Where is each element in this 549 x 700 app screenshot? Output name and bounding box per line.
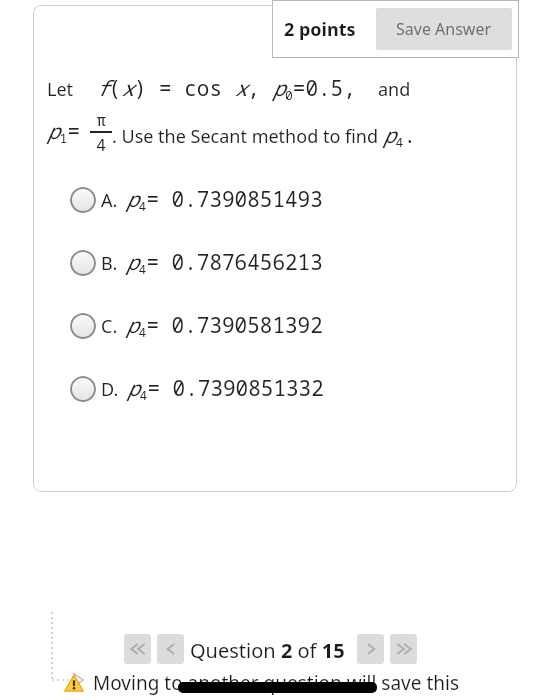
staticText: p4= 0.7390581392 (126, 311, 323, 341)
staticText: D. (101, 377, 119, 402)
staticText: p4= 0.7390851493 (126, 185, 323, 215)
staticText: . Use the Secant method to find (112, 124, 383, 149)
staticText: 2 points (284, 17, 356, 42)
button[interactable]: A. (70, 180, 323, 220)
button[interactable]: C. (70, 306, 323, 346)
button[interactable]: Save Answer (376, 8, 512, 50)
staticText: Save Answer (396, 18, 492, 40)
button[interactable]: First question (124, 634, 151, 664)
staticText: f(x) = cos x, p0=0.5, (96, 74, 356, 104)
staticText: B. (101, 251, 118, 276)
staticText: p4= 0.7390851332 (127, 374, 324, 404)
staticText: p4= 0.7876456213 (126, 248, 323, 278)
staticText: 4 (96, 133, 107, 156)
staticText: p1= (47, 117, 80, 147)
staticText: π (96, 108, 107, 131)
button[interactable]: Previous question (157, 634, 184, 664)
button[interactable]: Last question (390, 634, 417, 664)
staticText: A. (101, 188, 118, 213)
button[interactable]: B. (70, 243, 323, 283)
staticText: Let (47, 77, 74, 102)
button[interactable]: Next question (357, 634, 384, 664)
staticText: Moving to another question will save thi… (93, 670, 459, 696)
button[interactable]: D. (70, 369, 324, 409)
staticText: Question 2 of 15 (190, 637, 345, 664)
staticText: and (378, 77, 411, 102)
staticText: p4. (383, 121, 416, 151)
staticText: C. (101, 314, 118, 339)
